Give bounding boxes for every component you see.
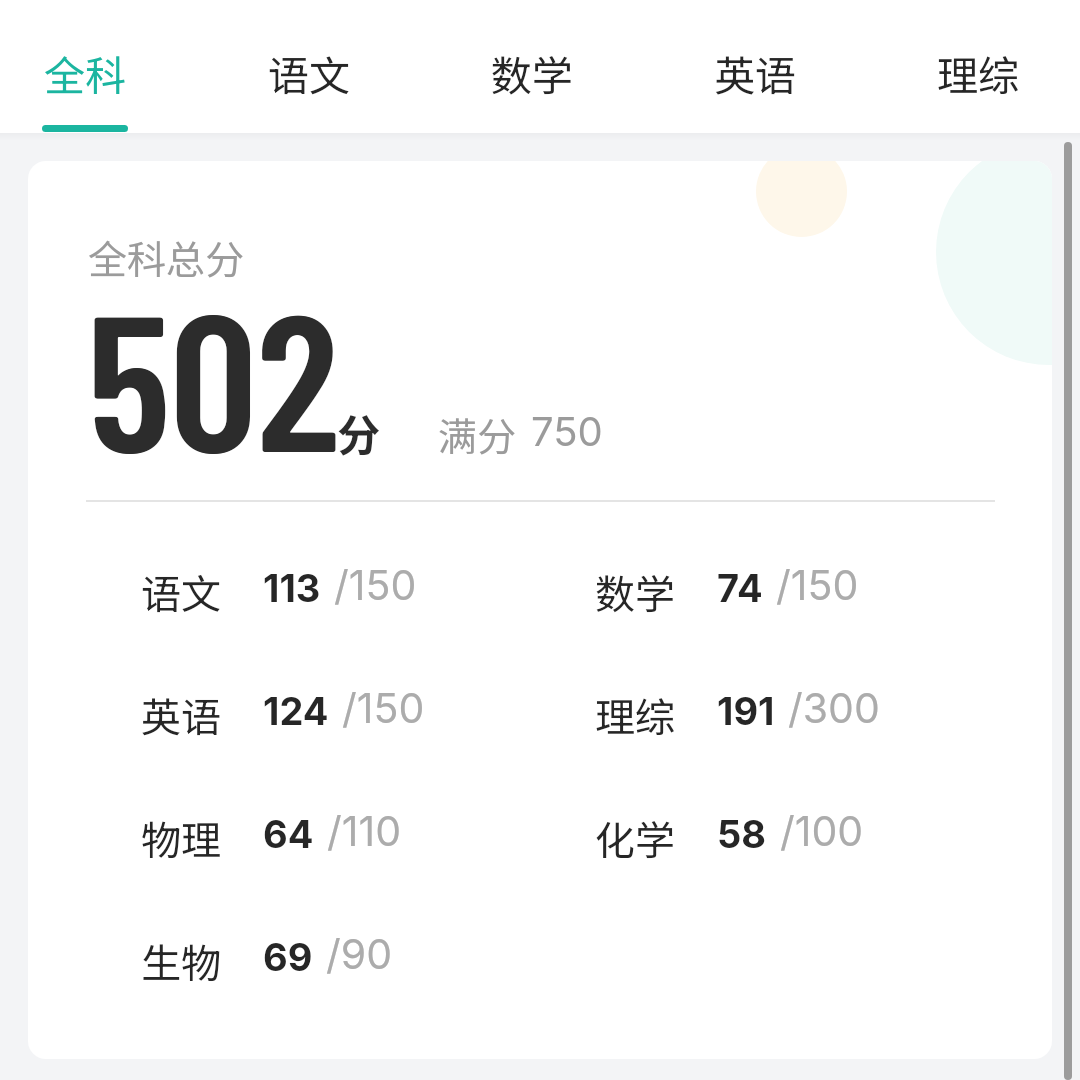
staticText: 113 xyxy=(263,565,321,611)
staticText: 英语 xyxy=(714,43,796,102)
staticText: 理综 xyxy=(937,43,1019,102)
staticText: /100 xyxy=(780,806,864,856)
button[interactable]: 理综 xyxy=(866,0,1080,133)
staticText: /300 xyxy=(788,683,880,733)
button[interactable]: 物理 xyxy=(141,809,401,867)
staticText: 58 xyxy=(717,811,767,857)
staticText: /90 xyxy=(326,929,393,979)
staticText: 191 xyxy=(717,688,775,734)
button[interactable]: 全科总分 xyxy=(28,161,1052,1059)
button[interactable]: 全科 xyxy=(0,0,196,133)
button[interactable]: 生物 xyxy=(141,932,393,990)
staticText: 64 xyxy=(263,811,314,857)
staticText: 69 xyxy=(263,934,313,980)
staticText: 74 xyxy=(717,565,763,611)
staticText: 分 xyxy=(337,401,380,463)
button[interactable]: 英语 xyxy=(141,686,425,744)
staticText: 物理 xyxy=(141,809,221,867)
button[interactable]: 化学 xyxy=(595,809,864,867)
staticText: 满分 xyxy=(438,406,517,462)
staticText: 语文 xyxy=(141,563,221,621)
button[interactable]: 理综 xyxy=(595,686,880,744)
staticText: 化学 xyxy=(595,809,675,867)
staticText: 750 xyxy=(531,407,603,455)
staticText: 生物 xyxy=(141,932,221,990)
staticText: /150 xyxy=(334,560,417,610)
staticText: /150 xyxy=(776,560,859,610)
staticText: 全科总分 xyxy=(88,229,245,285)
staticText: 理综 xyxy=(595,686,675,744)
staticText: 全科 xyxy=(44,43,126,102)
staticText: /150 xyxy=(342,683,425,733)
button[interactable]: 语文 xyxy=(141,563,417,621)
button[interactable]: 数学 xyxy=(420,0,643,133)
button[interactable]: 语文 xyxy=(197,0,420,133)
staticText: 502 xyxy=(88,259,340,491)
button[interactable]: 英语 xyxy=(643,0,866,133)
staticText: 数学 xyxy=(595,563,675,621)
staticText: 英语 xyxy=(141,686,221,744)
button[interactable]: 数学 xyxy=(595,563,859,621)
staticText: 语文 xyxy=(268,43,350,102)
staticText: 124 xyxy=(263,688,329,734)
staticText: 数学 xyxy=(491,43,573,102)
staticText: 502 xyxy=(87,259,339,491)
staticText: /110 xyxy=(327,806,401,856)
